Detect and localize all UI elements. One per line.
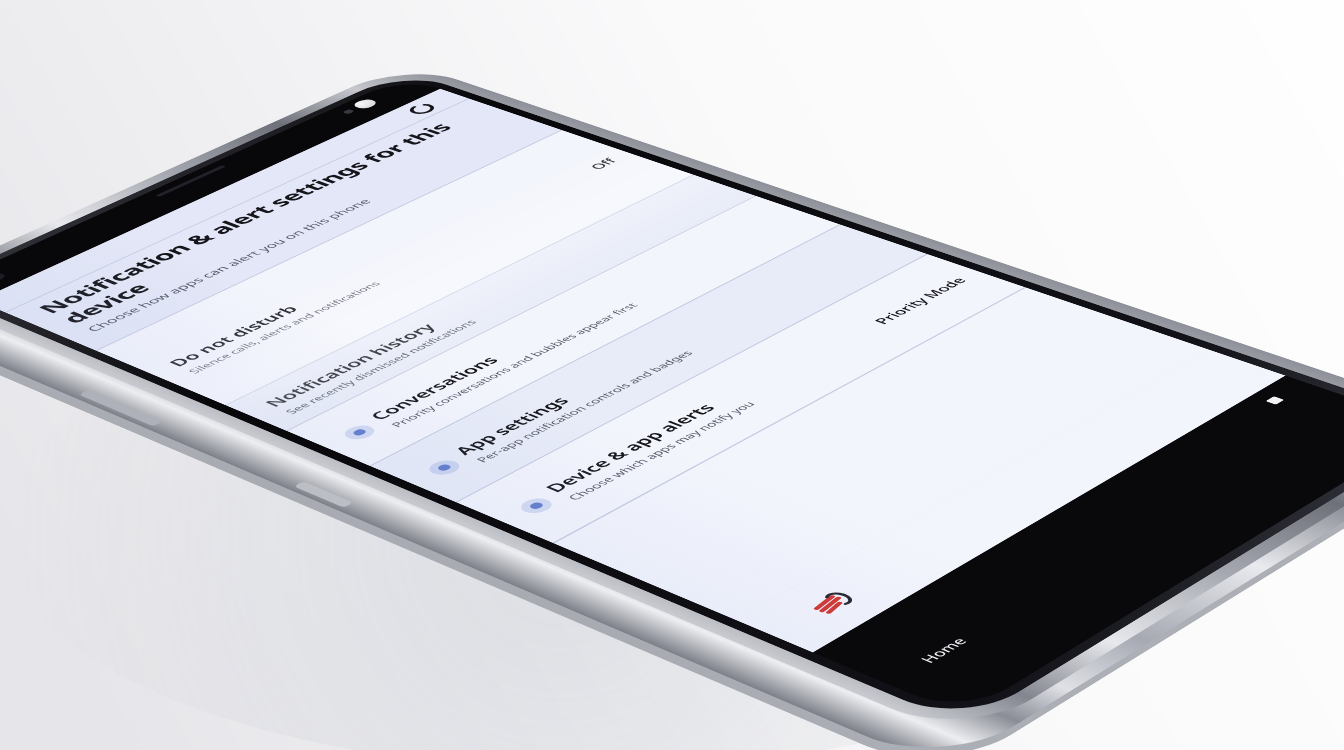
button[interactable]: Do not disturb: [97, 130, 693, 405]
staticText: Per-app notification controls and badges: [472, 349, 696, 464]
staticText: Home: [915, 635, 972, 665]
staticText: Choose which apps may notify you: [564, 399, 759, 502]
staticText: App settings: [448, 394, 574, 457]
staticText: Off: [585, 156, 621, 171]
staticText: Silence calls, alerts and notifications: [184, 279, 384, 375]
staticText: Notification & alert settings for this d…: [30, 109, 506, 326]
staticText: Device & app alerts: [538, 401, 721, 495]
button[interactable]: Notification history: [226, 175, 755, 431]
button[interactable]: Conversations: [288, 196, 840, 466]
button[interactable]: Account: [402, 101, 440, 117]
staticText: See recently dismissed notifications: [281, 318, 480, 416]
staticText: Notification history: [258, 321, 440, 409]
staticText: Do not disturb: [163, 303, 303, 369]
button[interactable]: Alerts: [796, 585, 868, 620]
staticText: Choose how apps can alert you on this ph…: [83, 197, 376, 334]
staticText: Conversations: [363, 354, 504, 422]
button[interactable]: Home: [915, 635, 972, 665]
button[interactable]: App settings: [371, 225, 927, 502]
staticText: Priority Mode: [869, 275, 971, 326]
staticText: Priority conversations and bubbles appea…: [387, 301, 641, 429]
button[interactable]: Device & app alerts: [457, 254, 1025, 543]
